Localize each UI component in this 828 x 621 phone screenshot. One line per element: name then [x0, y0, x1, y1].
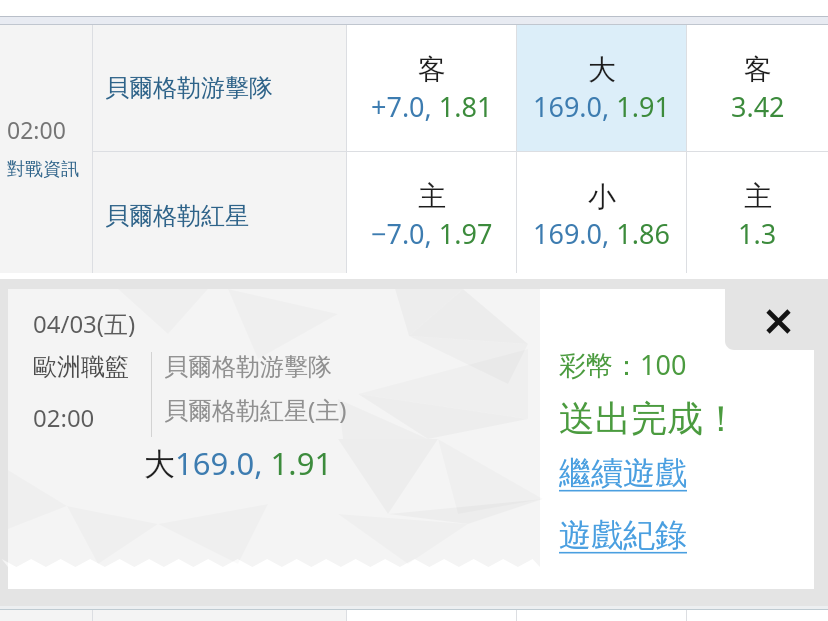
staticText: 04/03(五): [33, 307, 136, 340]
staticText: 主: [744, 179, 772, 214]
button[interactable]: Close: [748, 291, 808, 351]
button[interactable]: 對戰資訊: [7, 158, 79, 181]
staticText: 主: [418, 179, 446, 214]
staticText: −7.0, 1.97: [371, 215, 493, 252]
button[interactable]: 小: [517, 152, 686, 273]
button[interactable]: 主: [687, 152, 828, 273]
staticText: 客: [418, 52, 446, 87]
staticText: +7.0, 1.81: [371, 88, 493, 125]
staticText: 送出完成！: [559, 396, 739, 441]
button[interactable]: 繼續遊戲: [559, 453, 687, 493]
staticText: 貝爾格勒紅星(主): [164, 393, 347, 426]
staticText: 貝爾格勒游擊隊: [105, 73, 273, 103]
button[interactable]: 客: [687, 25, 828, 151]
staticText: 小: [588, 179, 616, 214]
staticText: 1.3: [738, 215, 777, 252]
staticText: 大: [588, 52, 616, 87]
button[interactable]: 貝爾格勒游擊隊: [93, 25, 346, 151]
button[interactable]: 客: [347, 25, 516, 151]
staticText: 繼續遊戲: [559, 453, 687, 493]
staticText: 169.0, 1.91: [533, 88, 670, 125]
staticText: 遊戲紀錄: [559, 515, 687, 555]
staticText: 3.42: [731, 88, 785, 125]
staticText: 歐洲職籃: [33, 352, 129, 382]
button[interactable]: 主: [347, 152, 516, 273]
staticText: 彩幣：100: [559, 346, 687, 383]
button[interactable]: 大: [517, 25, 686, 151]
staticText: 169.0, 1.86: [533, 215, 670, 252]
button[interactable]: 遊戲紀錄: [559, 515, 687, 555]
staticText: 客: [744, 52, 772, 87]
staticText: 貝爾格勒紅星: [105, 201, 249, 231]
staticText: 02:00: [7, 114, 66, 145]
button[interactable]: 貝爾格勒紅星: [93, 152, 346, 273]
staticText: 貝爾格勒游擊隊: [164, 352, 332, 382]
staticText: 02:00: [33, 401, 95, 434]
staticText: 大169.0, 1.91: [144, 442, 333, 484]
